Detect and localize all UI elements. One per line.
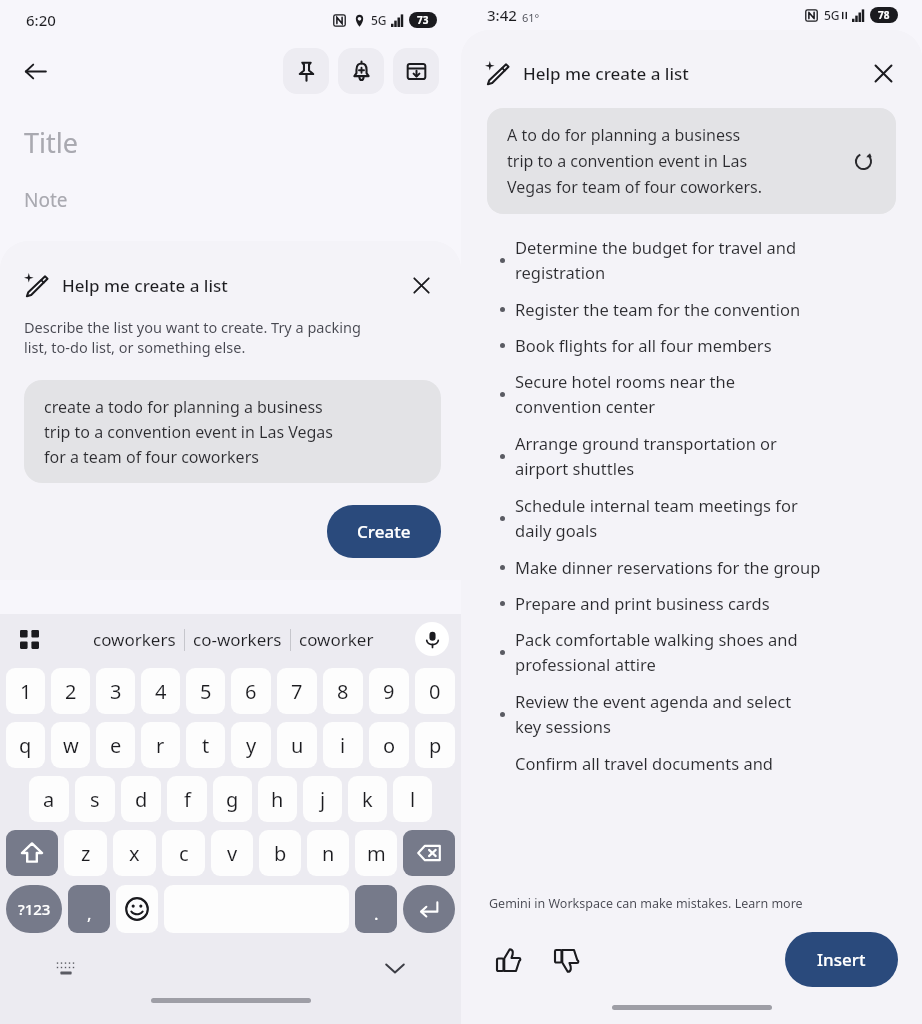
staticText: create a todo for planning a business tr… xyxy=(44,396,334,467)
staticText: Note xyxy=(24,187,68,213)
button[interactable]: Pin xyxy=(283,48,329,94)
button[interactable]: Reminder xyxy=(338,48,384,94)
button[interactable]: Good response xyxy=(485,937,531,983)
button[interactable]: e xyxy=(96,722,135,768)
staticText: r xyxy=(156,732,165,759)
button[interactable]: Emoji xyxy=(116,885,158,933)
staticText: Determine the budget for travel and regi… xyxy=(515,236,797,284)
staticText: Help me create a list xyxy=(62,274,228,297)
button[interactable]: q xyxy=(6,722,45,768)
staticText: Secure hotel rooms near the convention c… xyxy=(515,370,735,418)
button[interactable]: coworker xyxy=(291,628,382,651)
button[interactable]: Voice input xyxy=(415,622,449,656)
button[interactable]: a xyxy=(29,776,69,822)
button[interactable]: Create xyxy=(327,505,441,558)
staticText: l xyxy=(410,786,416,813)
button[interactable]: Gemini in Workspace can make mistakes. L… xyxy=(489,895,803,912)
button[interactable]: Change keyboard xyxy=(50,952,82,984)
staticText: 61° xyxy=(522,10,540,25)
staticText: 5 xyxy=(200,678,212,705)
button[interactable]: 1 xyxy=(6,668,45,714)
button[interactable]: i xyxy=(323,722,363,768)
staticText: s xyxy=(90,786,100,813)
button[interactable]: Backspace xyxy=(403,830,455,876)
button[interactable]: Hide keyboard xyxy=(377,950,413,986)
staticText: b xyxy=(274,840,287,867)
button[interactable]: r xyxy=(141,722,180,768)
staticText: 0 xyxy=(429,678,441,705)
button[interactable]: k xyxy=(348,776,387,822)
button[interactable]: n xyxy=(307,830,349,876)
button[interactable]: , xyxy=(68,885,110,933)
button[interactable]: Insert xyxy=(785,932,898,987)
staticText: 3:42 xyxy=(487,5,517,25)
button[interactable]: . xyxy=(355,885,397,933)
staticText: 1 xyxy=(20,678,32,705)
staticText: 7 xyxy=(291,678,303,705)
button[interactable]: Toolbar xyxy=(12,622,46,656)
staticText: Schedule internal team meetings for dail… xyxy=(515,494,798,542)
button[interactable]: 0 xyxy=(415,668,455,714)
button[interactable]: x xyxy=(113,830,156,876)
button[interactable]: w xyxy=(51,722,90,768)
button[interactable]: c xyxy=(162,830,205,876)
button[interactable]: p xyxy=(415,722,455,768)
button[interactable]: create a todo for planning a business tr… xyxy=(24,380,441,483)
button[interactable]: 7 xyxy=(277,668,317,714)
button[interactable]: t xyxy=(186,722,225,768)
button[interactable]: g xyxy=(213,776,252,822)
staticText: 3 xyxy=(110,678,122,705)
staticText: 4 xyxy=(155,678,167,705)
button[interactable]: j xyxy=(303,776,342,822)
button[interactable]: o xyxy=(369,722,409,768)
staticText: p xyxy=(429,732,442,759)
button[interactable]: 9 xyxy=(369,668,409,714)
staticText: Create xyxy=(357,520,411,543)
button[interactable]: Close xyxy=(401,265,441,305)
staticText: q xyxy=(19,732,32,759)
button[interactable]: Shift xyxy=(6,830,58,876)
button[interactable]: v xyxy=(211,830,253,876)
staticText: 6 xyxy=(245,678,257,705)
button[interactable]: 3 xyxy=(96,668,135,714)
staticText: Help me create a list xyxy=(523,62,689,85)
button[interactable]: Close xyxy=(862,52,904,94)
button[interactable]: Regenerate xyxy=(844,142,882,180)
button[interactable]: 5 xyxy=(186,668,225,714)
button[interactable]: 6 xyxy=(231,668,271,714)
staticText: coworkers xyxy=(93,628,176,651)
button[interactable]: y xyxy=(231,722,271,768)
button[interactable]: d xyxy=(121,776,161,822)
staticText: a xyxy=(43,786,55,813)
staticText: Describe the list you want to create. Tr… xyxy=(24,317,361,358)
button[interactable]: co-workers xyxy=(185,628,290,651)
staticText: Confirm all travel documents and xyxy=(515,752,773,774)
staticText: v xyxy=(227,840,238,867)
button[interactable]: f xyxy=(167,776,207,822)
staticText: Pack comfortable walking shoes and profe… xyxy=(515,628,798,676)
staticText: Book flights for all four members xyxy=(515,334,772,356)
staticText: A to do for planning a business trip to … xyxy=(507,124,836,198)
button[interactable]: s xyxy=(75,776,115,822)
button[interactable]: A to do for planning a business trip to … xyxy=(487,108,896,214)
button[interactable]: m xyxy=(355,830,397,876)
button[interactable]: Enter xyxy=(403,885,455,933)
button[interactable]: Archive xyxy=(393,48,439,94)
button[interactable]: ?123 xyxy=(6,885,62,933)
staticText: 2 xyxy=(65,678,77,705)
button[interactable]: z xyxy=(64,830,107,876)
button[interactable]: 8 xyxy=(323,668,363,714)
button[interactable]: 4 xyxy=(141,668,180,714)
button[interactable]: h xyxy=(258,776,297,822)
staticText: n xyxy=(322,840,335,867)
button[interactable]: l xyxy=(393,776,432,822)
button[interactable]: Bad response xyxy=(543,937,589,983)
staticText: w xyxy=(63,732,79,759)
button[interactable]: u xyxy=(277,722,317,768)
button[interactable]: coworkers xyxy=(85,628,184,651)
button[interactable]: Back xyxy=(14,50,56,92)
button[interactable]: b xyxy=(259,830,301,876)
staticText: u xyxy=(291,732,304,759)
button[interactable]: 2 xyxy=(51,668,90,714)
